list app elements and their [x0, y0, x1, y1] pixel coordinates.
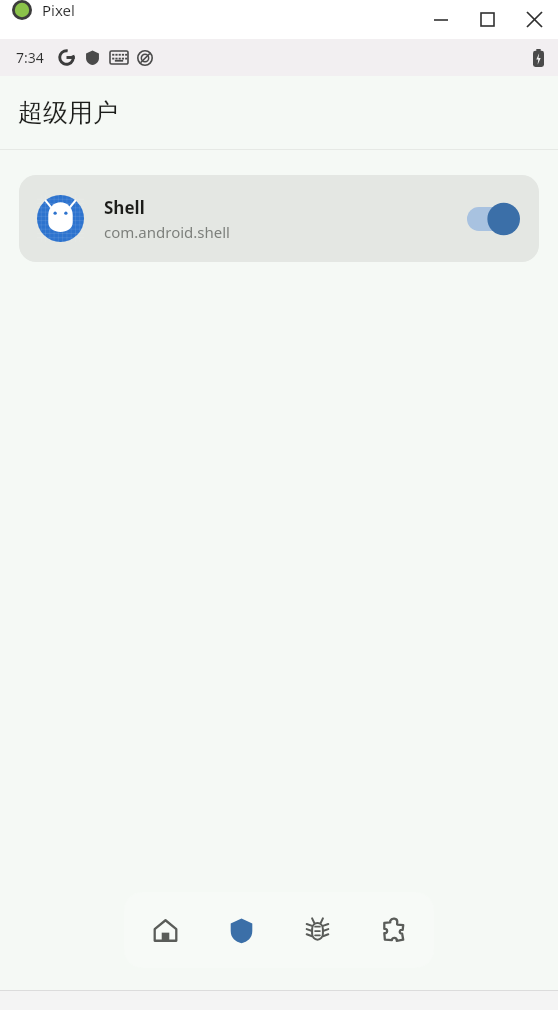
button[interactable]: Superuser — [206, 892, 276, 968]
staticText: Pixel — [42, 0, 75, 20]
button[interactable]: Minimize — [418, 0, 464, 39]
button[interactable]: Shell — [19, 175, 539, 262]
staticText: com.android.shell — [104, 222, 230, 242]
button[interactable]: Close — [510, 0, 558, 39]
button[interactable]: Home — [130, 892, 200, 968]
button[interactable]: Logs — [282, 892, 352, 968]
button[interactable]: Modules — [358, 892, 428, 968]
staticText: Shell — [104, 196, 145, 219]
staticText: 7:34 — [16, 48, 44, 67]
button[interactable]: Toggle root access for Shell — [467, 202, 521, 236]
staticText: 超级用户 — [18, 97, 118, 128]
button[interactable]: Maximize — [464, 0, 510, 39]
